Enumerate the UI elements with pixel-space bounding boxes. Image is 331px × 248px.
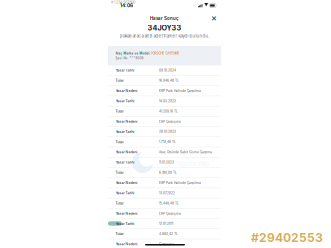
staticText: plakalı araca ait 8 adet tramer kaydı bu… bbox=[119, 33, 209, 39]
staticText: ✕ bbox=[211, 14, 217, 23]
staticText: #29402553 bbox=[251, 230, 323, 245]
staticText: 34JOY33 bbox=[147, 24, 181, 32]
staticText: PORSCHE CAYENNE bbox=[151, 51, 180, 55]
staticText: Tutar bbox=[116, 201, 124, 205]
staticText: 14:06 bbox=[120, 3, 133, 8]
staticText: Hasar Tarihi bbox=[116, 160, 135, 164]
staticText: Araç Önünde Sabit Cisme Çarpma bbox=[159, 150, 212, 154]
staticText: Tutar bbox=[116, 79, 124, 83]
staticText: 15.449,48 TL bbox=[159, 201, 179, 205]
staticText: Hasar Tarihi bbox=[116, 130, 135, 134]
staticText: ▼ bbox=[204, 3, 208, 8]
staticText: ERP Park Halinde Çarpılma bbox=[159, 181, 201, 185]
staticText: 13.07.2022 bbox=[159, 191, 175, 195]
staticText: Hasar Nedeni bbox=[116, 89, 138, 93]
staticText: Hasar Sonuç bbox=[150, 16, 179, 21]
staticText: Tutar bbox=[116, 232, 124, 236]
staticText: 28.01.2023 bbox=[159, 130, 176, 134]
staticText: 09.10.2024 bbox=[159, 68, 176, 72]
staticText: 41.209,16 TL bbox=[159, 109, 178, 113]
staticText: Hasar Nedeni bbox=[116, 181, 138, 185]
staticText: Tutar bbox=[116, 171, 124, 175]
staticText: Hasar Nedeni bbox=[116, 119, 138, 123]
staticText: Hasar Tarihi bbox=[116, 222, 135, 226]
staticText: Sigorta Bilgi bbox=[176, 160, 209, 167]
staticText: Hasar Nedeni bbox=[116, 211, 138, 215]
staticText: Hasar Tarihi bbox=[116, 68, 135, 72]
button[interactable]: Kapat bbox=[210, 14, 218, 22]
staticText: 16.046,48 TL bbox=[159, 79, 179, 83]
staticText: 4.683,42 TL bbox=[159, 232, 178, 236]
staticText: 6.180,00 TL bbox=[159, 171, 177, 174]
staticText: ERP Çarpışma bbox=[159, 211, 181, 215]
staticText: Tutar bbox=[116, 109, 124, 113]
staticText: 1.713,48 TL bbox=[159, 140, 176, 144]
staticText: ERP Park Halinde Çarpılma bbox=[159, 89, 201, 93]
staticText: Çarpışma bbox=[159, 242, 174, 246]
staticText: Hasar Nedeni bbox=[116, 242, 138, 246]
staticText: 11.01.2023 bbox=[159, 160, 174, 164]
staticText: ERP Çarpışma bbox=[159, 119, 181, 123]
staticText: 14.03.2023 bbox=[159, 99, 176, 103]
staticText: Araç Marka ve Model: bbox=[116, 51, 151, 55]
staticText: Tutar bbox=[116, 140, 124, 144]
staticText: Hasar Nedeni bbox=[116, 150, 138, 154]
staticText: Hasar Tarihi bbox=[116, 99, 135, 103]
staticText: Şasi No: ***8038 bbox=[116, 56, 144, 60]
staticText: #1234567890 bbox=[111, 0, 136, 4]
staticText: Hasar Tarihi bbox=[116, 191, 135, 195]
staticText: 12.01.2011 bbox=[159, 222, 173, 226]
